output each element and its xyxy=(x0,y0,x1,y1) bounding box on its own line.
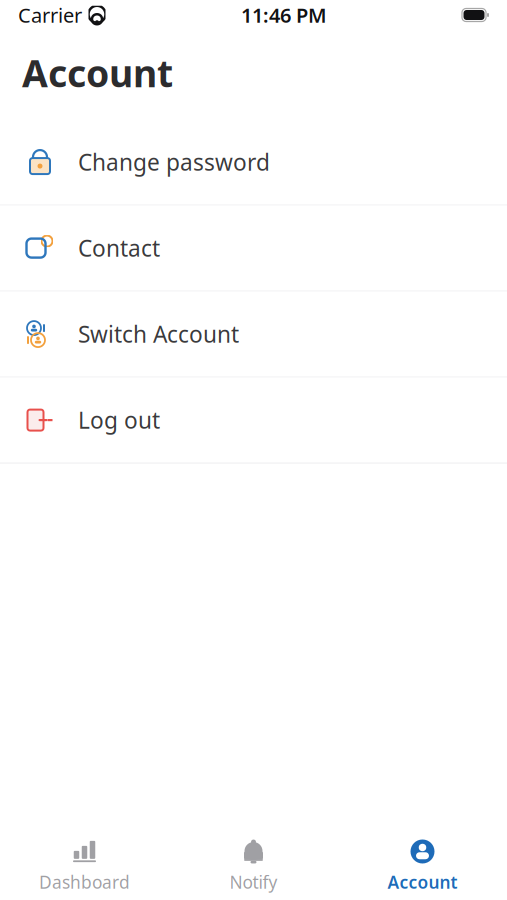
staticText: Account xyxy=(387,870,457,893)
staticText: Switch Account xyxy=(78,319,239,349)
button[interactable]: Switch Account xyxy=(0,292,507,378)
staticText: Contact xyxy=(78,233,160,263)
button[interactable]: Notify xyxy=(169,828,338,900)
staticText: 11:46 PM xyxy=(241,2,327,28)
button[interactable]: Account xyxy=(338,828,507,900)
button[interactable]: Contact xyxy=(0,206,507,292)
staticText: Log out xyxy=(78,405,160,435)
staticText: Notify xyxy=(229,870,277,893)
staticText: Carrier xyxy=(18,2,82,28)
button[interactable]: Dashboard xyxy=(0,828,169,900)
button[interactable]: Log out xyxy=(0,378,507,464)
staticText: Dashboard xyxy=(39,870,130,893)
staticText: Change password xyxy=(78,147,270,177)
button[interactable]: Change password xyxy=(0,120,507,206)
staticText: Account xyxy=(22,48,173,98)
